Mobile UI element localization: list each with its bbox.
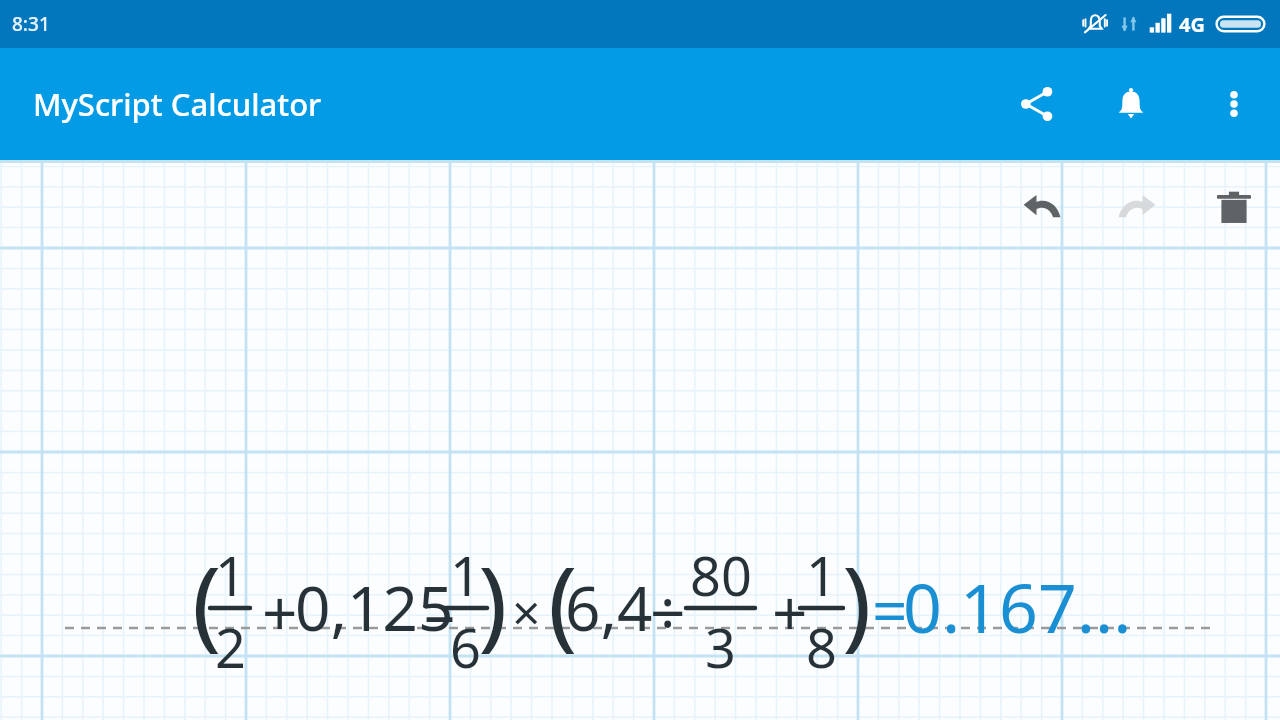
staticText: 3 [705,610,736,684]
staticText: 2 [215,610,246,684]
staticText: 0,125 [295,565,454,649]
button[interactable]: Delete [1204,178,1264,238]
staticText: 1 [450,538,481,612]
staticText: ) [842,533,872,666]
staticText: 8 [806,610,837,684]
staticText: 6 [450,610,481,684]
staticText: 0.167... [903,560,1132,653]
staticText: 6,4 [565,565,653,649]
staticText: 8:31 [12,11,50,37]
button[interactable]: Redo [1107,178,1167,238]
button[interactable]: Share [1007,74,1067,134]
button[interactable]: More options [1204,74,1264,134]
staticText: 80 [690,538,752,612]
staticText: × [512,578,541,646]
staticText: ÷ [650,570,686,654]
staticText: ( [192,533,222,666]
staticText: + [262,570,298,654]
staticText: 4G [1179,11,1205,38]
staticText: 1 [806,538,837,612]
button[interactable]: Notifications [1101,74,1161,134]
button[interactable]: Undo [1012,178,1072,238]
staticText: 1 [215,538,246,612]
staticText: + [772,570,808,654]
staticText: ( [548,533,578,666]
staticText: = [872,568,908,652]
staticText: MyScript Calculator [33,83,322,125]
staticText: – [424,570,456,654]
staticText: ) [478,533,508,666]
